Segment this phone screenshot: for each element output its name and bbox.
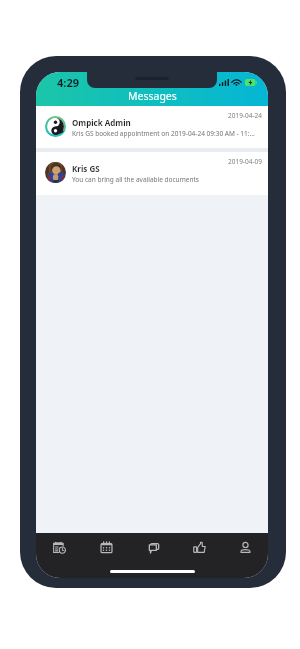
staticText: 2019-04-09 <box>228 157 262 166</box>
button[interactable]: Messages <box>130 533 176 562</box>
button[interactable]: Ompick Admin <box>36 106 268 148</box>
staticText: You can bring all the available document… <box>72 175 199 184</box>
button[interactable]: Appointments <box>36 533 83 562</box>
staticText: 4:29 <box>57 75 79 90</box>
button[interactable]: Profile <box>222 533 268 562</box>
staticText: Kris GS booked appointment on 2019-04-24… <box>72 129 255 138</box>
button[interactable]: Kris GS <box>36 152 268 195</box>
staticText: 2019-04-24 <box>228 111 262 120</box>
staticText: Messages <box>128 89 177 103</box>
staticText: Kris GS <box>72 163 100 174</box>
button[interactable]: Reviews <box>176 533 222 562</box>
button[interactable]: Calendar <box>83 533 130 562</box>
staticText: Ompick Admin <box>72 117 131 128</box>
